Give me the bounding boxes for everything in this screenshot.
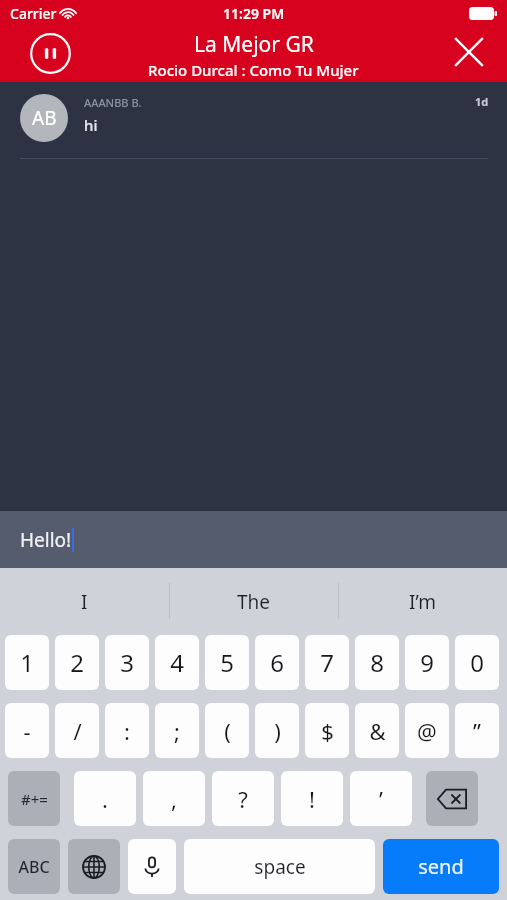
staticText: 3	[120, 646, 134, 679]
button[interactable]: Close	[449, 32, 489, 72]
staticText: $	[321, 716, 334, 746]
button[interactable]: AB	[20, 94, 68, 142]
staticText: AB	[32, 105, 57, 131]
button[interactable]: 0	[455, 635, 499, 690]
staticText: Hello!	[20, 527, 72, 553]
button[interactable]: space	[184, 839, 375, 894]
button[interactable]: ,	[143, 771, 205, 826]
button[interactable]: Voice input	[128, 839, 176, 894]
button[interactable]: $	[305, 703, 349, 758]
staticText: :	[124, 716, 130, 746]
staticText: !	[309, 784, 315, 814]
staticText: 1d	[475, 94, 489, 109]
staticText: La Mejor GR	[194, 30, 314, 59]
staticText: Rocio Durcal : Como Tu Mujer	[148, 60, 359, 80]
staticText: 9	[420, 646, 434, 679]
staticText: AAANBB B.	[84, 95, 142, 110]
staticText: &	[369, 716, 386, 746]
staticText: I’m	[409, 589, 436, 615]
button[interactable]: 9	[405, 635, 449, 690]
button[interactable]: 5	[205, 635, 249, 690]
staticText: hi	[84, 115, 98, 135]
button[interactable]: Backspace	[426, 771, 478, 826]
button[interactable]: (	[205, 703, 249, 758]
staticText: ;	[174, 716, 180, 746]
button[interactable]: I’m	[338, 568, 507, 635]
staticText: 4	[170, 646, 184, 679]
staticText: /	[73, 716, 82, 746]
staticText: send	[418, 853, 464, 880]
staticText: 0	[470, 646, 484, 679]
button[interactable]: 2	[55, 635, 99, 690]
staticText: Carrier	[10, 4, 57, 23]
button[interactable]: ”	[455, 703, 499, 758]
staticText: -	[23, 716, 31, 746]
button[interactable]: @	[405, 703, 449, 758]
button[interactable]: ?	[212, 771, 274, 826]
staticText: The	[237, 589, 271, 615]
button[interactable]: send	[383, 839, 499, 894]
button[interactable]: 6	[255, 635, 299, 690]
staticText: 1	[20, 646, 34, 679]
staticText: #+=	[21, 789, 48, 809]
button[interactable]: 4	[155, 635, 199, 690]
button[interactable]: :	[105, 703, 149, 758]
button[interactable]: Change keyboard	[68, 839, 120, 894]
button[interactable]: 8	[355, 635, 399, 690]
button[interactable]: ’	[350, 771, 412, 826]
staticText: 7	[320, 646, 334, 679]
staticText: 11:29 PM	[223, 4, 285, 23]
button[interactable]: 7	[305, 635, 349, 690]
button[interactable]: )	[255, 703, 299, 758]
button[interactable]: ;	[155, 703, 199, 758]
button[interactable]: .	[74, 771, 136, 826]
staticText: 6	[270, 646, 284, 679]
button[interactable]: &	[355, 703, 399, 758]
button[interactable]: !	[281, 771, 343, 826]
staticText: ”	[473, 716, 481, 746]
button[interactable]: /	[55, 703, 99, 758]
staticText: ’	[379, 784, 383, 814]
staticText: 8	[370, 646, 384, 679]
button[interactable]: Pause	[30, 33, 71, 74]
button[interactable]: 1	[5, 635, 49, 690]
staticText: 5	[220, 646, 234, 679]
staticText: (	[224, 716, 231, 746]
staticText: space	[254, 854, 306, 880]
button[interactable]: I	[0, 568, 169, 635]
button[interactable]: The	[169, 568, 338, 635]
staticText: )	[274, 716, 281, 746]
staticText: @	[417, 716, 437, 746]
staticText: 2	[70, 646, 84, 679]
button[interactable]: ABC	[8, 839, 60, 894]
staticText: ,	[171, 784, 177, 814]
staticText: ?	[238, 784, 248, 814]
button[interactable]: #+=	[8, 771, 60, 826]
staticText: .	[102, 784, 108, 814]
staticText: ABC	[18, 856, 50, 878]
button[interactable]: -	[5, 703, 49, 758]
button[interactable]: 3	[105, 635, 149, 690]
staticText: I	[81, 589, 88, 615]
